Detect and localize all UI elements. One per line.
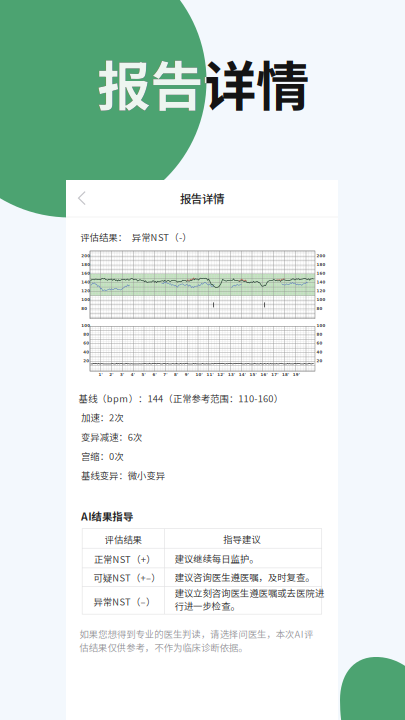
staticText: 报告详情 [180,190,224,207]
staticText: 80 [316,306,322,311]
staticText: 加速：2次 [81,410,123,424]
staticText: 19' [293,372,300,377]
staticText: 报告详情 [97,44,309,121]
staticText: 13' [228,372,235,377]
button[interactable]: Back [66,180,98,217]
staticText: 1' [98,372,102,377]
staticText: 建议继续每日监护。 [174,552,258,565]
staticText: 80 [316,332,322,337]
staticText: 120 [81,289,90,293]
staticText: 120 [316,289,325,293]
staticText: 6' [152,372,156,377]
staticText: 160 [81,271,90,276]
staticText: 异常NST（–） [93,595,155,608]
staticText: 2' [109,372,113,377]
staticText: 14' [239,372,246,377]
staticText: 变异减速：6次 [81,430,142,443]
staticText: 20 [316,358,322,363]
staticText: 180 [316,262,325,267]
staticText: 基线变异：微小变异 [81,468,165,482]
staticText: 40 [316,350,322,354]
staticText: 200 [316,253,325,258]
staticText: 200 [81,253,90,258]
staticText: 40 [83,350,89,354]
staticText: 15' [250,372,257,377]
staticText: 3' [120,372,124,377]
staticText: 8' [174,372,178,377]
staticText: 估结果仅供参考，不作为临床诊断依据。 [79,640,247,654]
staticText: 100 [316,323,325,328]
staticText: 180 [81,262,90,267]
staticText: 报告详情 [97,44,309,121]
staticText: 10' [196,372,203,377]
staticText: 80 [81,306,87,311]
staticText: 17' [271,372,278,377]
staticText: 可疑NST（+–） [93,571,160,584]
staticText: 宫缩：0次 [81,449,123,463]
staticText: 评估结果： 异常NST（-） [80,230,191,244]
staticText: 100 [81,297,90,302]
staticText: 指导建议 [223,532,260,546]
staticText: 7' [163,372,167,377]
staticText: 正常NST（+） [94,552,155,566]
staticText: 4' [131,372,135,377]
staticText: 100 [316,297,325,302]
staticText: 建议立刻咨询医生遵医嘱或去医院进 [174,586,324,599]
staticText: 160 [316,271,325,276]
staticText: 12' [217,372,224,377]
staticText: 5' [142,372,146,377]
staticText: 140 [81,280,90,284]
staticText: 11' [206,372,213,377]
staticText: 100 [81,323,90,328]
staticText: 60 [316,341,322,346]
staticText: AI结果指导 [81,508,133,524]
staticText: 18' [282,372,289,377]
staticText: 60 [83,341,89,346]
staticText: 80 [83,332,89,337]
staticText: 140 [316,280,325,284]
staticText: 基线（bpm）：144（正常参考范围：110-160） [79,391,283,405]
staticText: 行进一步检查。 [174,599,239,612]
staticText: 20 [83,358,89,363]
staticText: 16' [260,372,267,377]
staticText: 9' [185,372,189,377]
staticText: 评估结果 [105,532,142,546]
staticText: 如果您想得到专业的医生判读，请选择问医生，本次AI评 [79,627,313,640]
staticText: 建议咨询医生遵医嘱，及时复查。 [174,570,314,584]
